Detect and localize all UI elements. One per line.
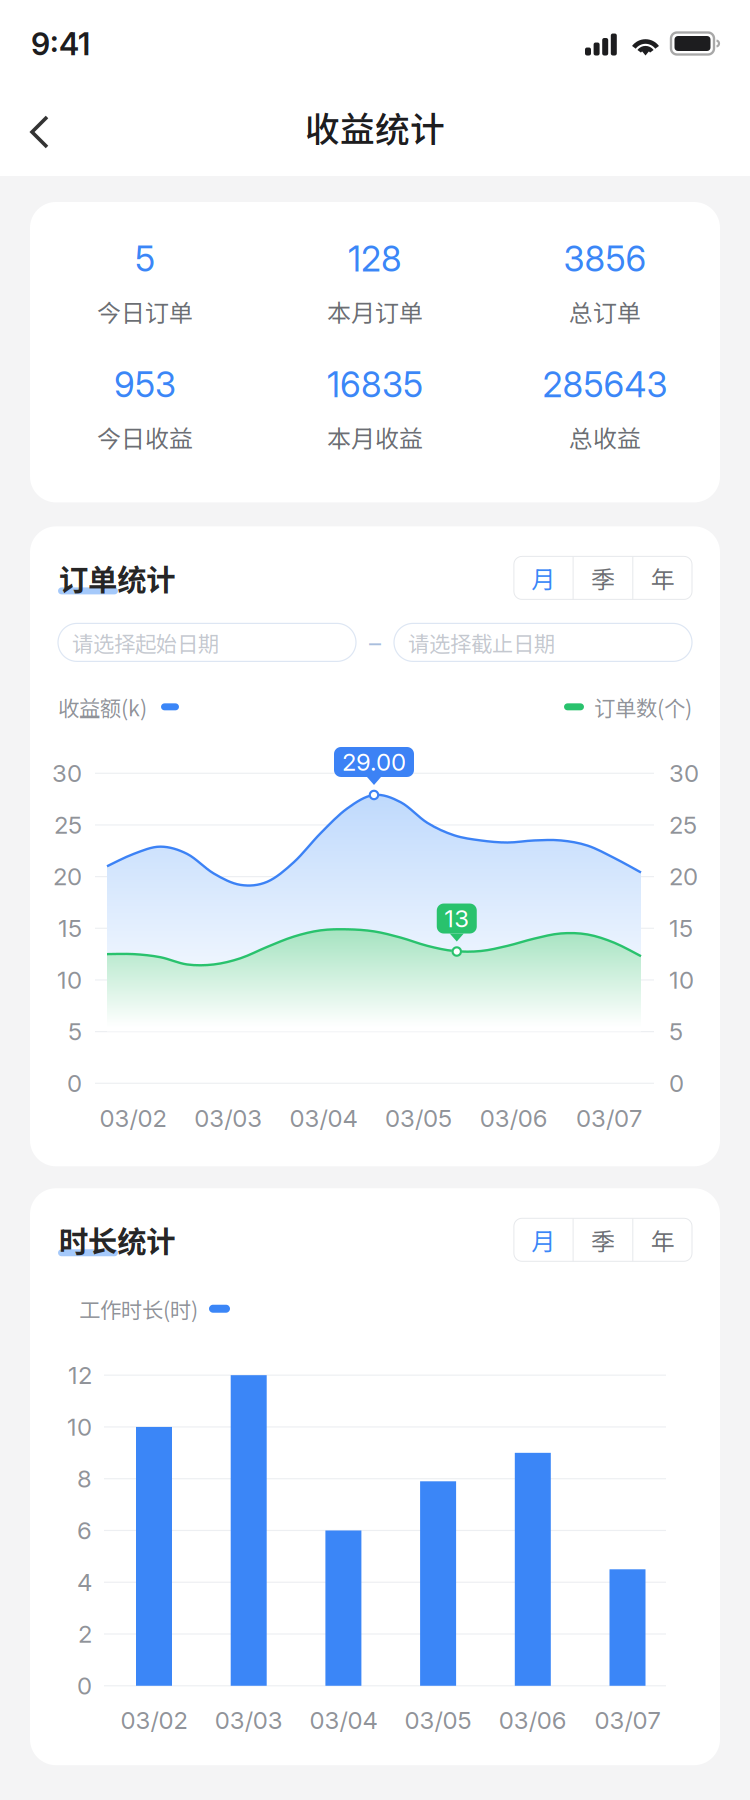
staticText: 8 [77, 1464, 92, 1493]
staticText: 0 [67, 1069, 82, 1098]
staticText: 3856 [563, 238, 646, 280]
staticText: 今日收益 [97, 420, 193, 454]
staticText: 5 [68, 1017, 82, 1046]
staticText: 03/06 [480, 1104, 548, 1133]
staticText: 请选择截止日期 [408, 627, 555, 658]
staticText: 15 [669, 914, 693, 943]
staticText: 30 [669, 759, 699, 788]
staticText: 总收益 [569, 420, 641, 454]
staticText: 10 [67, 1412, 92, 1441]
staticText: 15 [58, 914, 82, 943]
staticText: 03/07 [576, 1104, 642, 1133]
staticText: 订单数(个) [594, 691, 692, 722]
button[interactable]: 季 [574, 1218, 632, 1261]
staticText: 285643 [542, 364, 667, 406]
staticText: 12 [68, 1361, 92, 1390]
staticText: 2 [78, 1619, 92, 1648]
staticText: 03/04 [289, 1104, 357, 1133]
staticText: 10 [669, 965, 694, 994]
staticText: 13 [444, 904, 469, 933]
staticText: 工作时长(时) [79, 1293, 198, 1324]
staticText: 季 [591, 560, 615, 595]
button[interactable]: 请选择截止日期 [394, 623, 692, 661]
staticText: 订单统计 [59, 556, 175, 599]
staticText: 5 [669, 1017, 683, 1046]
staticText: 请选择起始日期 [72, 627, 219, 658]
staticText: 本月订单 [327, 294, 423, 329]
button[interactable]: 请选择起始日期 [58, 623, 356, 661]
button[interactable]: 季 [574, 556, 632, 599]
staticText: 953 [114, 364, 176, 406]
staticText: 收益额(k) [58, 691, 147, 722]
staticText: 6 [77, 1516, 92, 1545]
staticText: 年 [651, 1222, 675, 1257]
staticText: 03/02 [120, 1706, 187, 1735]
staticText: 128 [348, 238, 402, 280]
button[interactable]: 月 [514, 1218, 573, 1261]
staticText: 25 [54, 810, 82, 839]
staticText: 03/03 [215, 1706, 283, 1735]
staticText: 03/04 [309, 1706, 377, 1735]
staticText: 0 [669, 1069, 684, 1098]
staticText: 25 [669, 810, 697, 839]
staticText: 03/05 [405, 1706, 472, 1735]
staticText: 30 [52, 759, 82, 788]
staticText: 0 [77, 1671, 92, 1700]
staticText: 月 [531, 560, 555, 595]
button[interactable]: Back [0, 98, 75, 166]
button[interactable]: 年 [633, 1218, 692, 1261]
staticText: 16835 [327, 364, 423, 406]
staticText: 年 [651, 560, 675, 595]
staticText: 03/07 [594, 1706, 660, 1735]
staticText: 收益统计 [305, 102, 445, 152]
staticText: 时长统计 [59, 1218, 175, 1261]
staticText: 03/02 [99, 1104, 166, 1133]
staticText: 03/03 [194, 1104, 262, 1133]
staticText: 10 [57, 965, 82, 994]
staticText: 本月收益 [327, 420, 423, 454]
staticText: 5 [135, 238, 155, 280]
staticText: 季 [591, 1222, 615, 1257]
staticText: 29.00 [342, 747, 406, 776]
staticText: 20 [669, 862, 698, 891]
staticText: 总订单 [569, 294, 641, 329]
staticText: 今日订单 [97, 294, 193, 329]
staticText: 20 [53, 862, 82, 891]
button[interactable]: 年 [633, 556, 692, 599]
staticText: – [369, 628, 381, 657]
staticText: 03/06 [499, 1706, 567, 1735]
staticText: 月 [531, 1222, 555, 1257]
staticText: 9:41 [31, 25, 90, 62]
staticText: 4 [77, 1568, 92, 1597]
staticText: 03/05 [385, 1104, 452, 1133]
button[interactable]: 月 [514, 556, 573, 599]
